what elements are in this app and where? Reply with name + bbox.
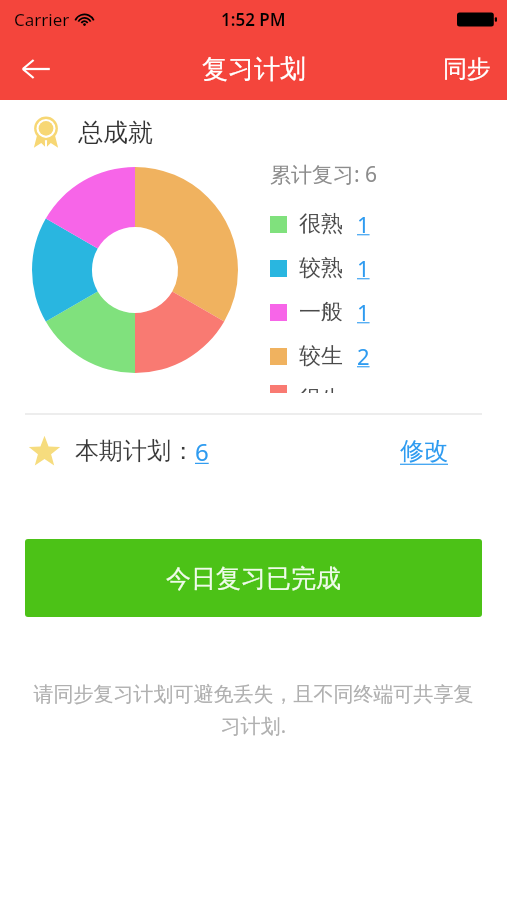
button[interactable]: 一般 xyxy=(270,290,507,334)
button[interactable]: 很熟 xyxy=(270,202,507,246)
staticText: 今日复习已完成 xyxy=(166,563,341,594)
button[interactable]: Back xyxy=(12,45,60,93)
staticText: 1 xyxy=(357,297,370,327)
staticText: 本期计划： xyxy=(75,436,195,466)
staticText: 很生 xyxy=(299,385,343,393)
staticText: 请同步复习计划可避免丢失，且不同终端可共享复习计划. xyxy=(32,682,475,738)
staticText: 1 xyxy=(357,209,370,239)
staticText: 1:52 PM xyxy=(221,8,286,31)
staticText: 累计复习: 6 xyxy=(270,160,378,189)
button[interactable]: 很生 xyxy=(270,378,507,400)
staticText: 修改 xyxy=(400,436,448,466)
staticText: 1 xyxy=(357,253,370,283)
staticText: 2 xyxy=(357,341,370,371)
staticText: Carrier xyxy=(14,8,70,31)
button[interactable]: 较熟 xyxy=(270,246,507,290)
button[interactable]: 今日复习已完成 xyxy=(25,539,482,617)
button[interactable]: 修改 xyxy=(396,432,452,470)
staticText: 总成就 xyxy=(78,117,153,148)
staticText: 很熟 xyxy=(299,210,343,238)
staticText: 一般 xyxy=(299,298,343,326)
staticText: 较熟 xyxy=(299,254,343,282)
staticText: 复习计划 xyxy=(202,53,306,86)
staticText: 同步 xyxy=(443,54,491,84)
button[interactable]: 6 xyxy=(195,435,209,468)
button[interactable]: 同步 xyxy=(427,44,507,94)
staticText: 较生 xyxy=(299,342,343,370)
button[interactable]: 较生 xyxy=(270,334,507,378)
